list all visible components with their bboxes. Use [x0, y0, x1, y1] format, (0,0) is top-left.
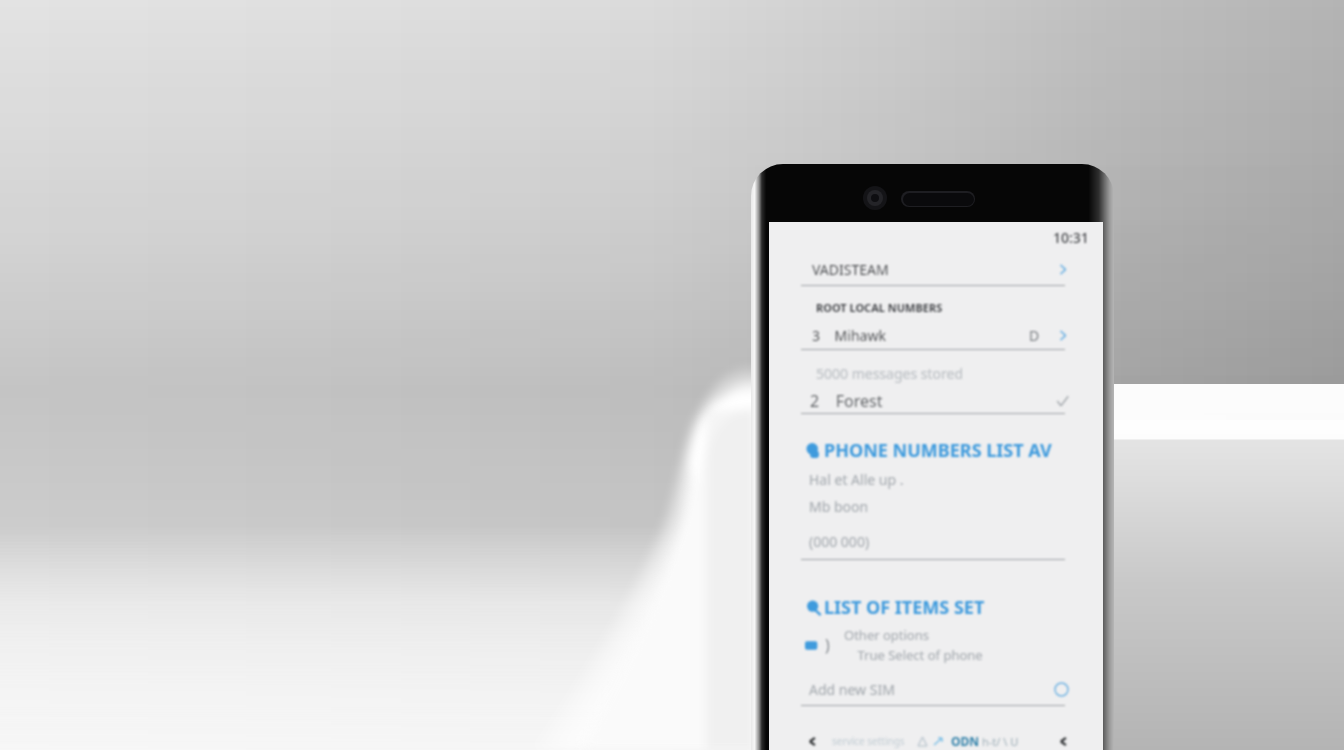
- staticText: Other options: [844, 626, 929, 644]
- button[interactable]: 3 Mihawk: [769, 322, 1103, 348]
- staticText: (000 000): [809, 532, 870, 551]
- staticText: LIST OF ITEMS SET: [824, 595, 985, 619]
- staticText: 5000 messages stored: [816, 364, 964, 383]
- button[interactable]: LIST OF ITEMS SET: [769, 595, 1103, 619]
- other: Add: [1054, 682, 1069, 697]
- staticText: Hal et Alle up .: [809, 470, 904, 489]
- staticText: VADISTEAM: [812, 260, 889, 279]
- other: SIM card: [805, 638, 820, 653]
- staticText: Add new SIM: [809, 680, 895, 699]
- staticText: PHONE NUMBERS LIST AV: [824, 438, 1052, 462]
- staticText: 10:31: [1053, 228, 1089, 247]
- other: Selected: [1056, 395, 1069, 408]
- button[interactable]: Add new SIM: [769, 677, 1103, 701]
- button[interactable]: SIM card: [769, 626, 1103, 664]
- button[interactable]: VADISTEAM: [769, 256, 1103, 282]
- staticText: 2 Forest: [810, 390, 883, 412]
- staticText: Mb boon: [809, 497, 869, 516]
- staticText: ): [825, 634, 830, 656]
- button[interactable]: Back: [807, 736, 818, 747]
- staticText: service settings: [832, 734, 905, 748]
- staticText: ODN: [951, 733, 980, 749]
- staticText: 3 Mihawk: [812, 326, 886, 345]
- button[interactable]: PHONE NUMBERS LIST AV: [769, 438, 1103, 462]
- staticText: True Select of phone: [844, 646, 983, 664]
- button[interactable]: Share: [933, 736, 944, 747]
- staticText: D: [1029, 326, 1040, 345]
- staticText: ROOT LOCAL NUMBERS: [816, 300, 943, 315]
- button[interactable]: Forward: [1058, 736, 1069, 747]
- staticText: h-t/ \ U: [982, 734, 1019, 749]
- button[interactable]: 2 Forest: [769, 388, 1103, 414]
- button[interactable]: Alerts: [917, 736, 928, 747]
